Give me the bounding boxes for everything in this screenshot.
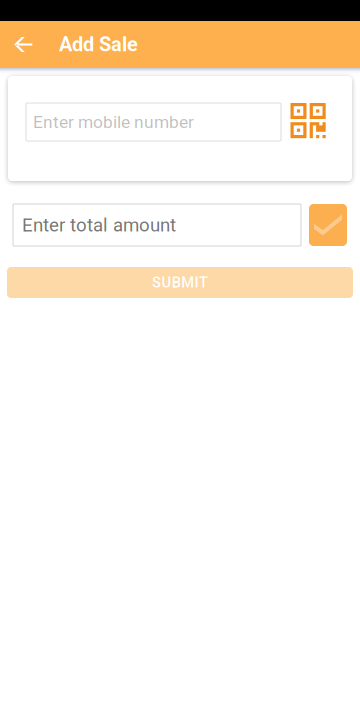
button[interactable]: Confirm amount bbox=[309, 204, 347, 246]
button[interactable]: SUBMIT bbox=[7, 267, 353, 298]
staticText: SUBMIT bbox=[152, 274, 208, 291]
button[interactable]: Back bbox=[8, 21, 40, 68]
staticText: Enter mobile number bbox=[33, 112, 194, 132]
button[interactable]: Scan QR code bbox=[290, 103, 326, 138]
staticText: Enter total amount bbox=[22, 214, 176, 236]
staticText: Add Sale bbox=[59, 33, 138, 56]
